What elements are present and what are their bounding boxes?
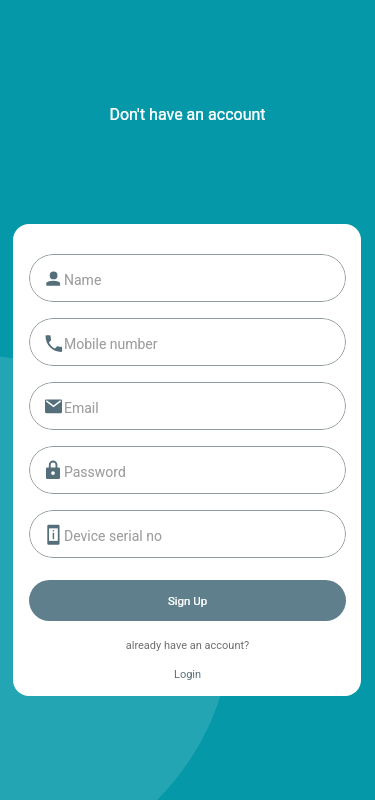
staticText: Name (64, 272, 102, 288)
button[interactable]: Login (160, 665, 216, 684)
staticText: Mobile number (64, 336, 158, 352)
button[interactable]: Device serial no (29, 510, 346, 558)
button[interactable]: Password (29, 446, 346, 494)
staticText: Email (64, 400, 99, 416)
staticText: already have an account? (29, 639, 346, 652)
staticText: Device serial no (64, 528, 162, 544)
button[interactable]: Email (29, 382, 346, 430)
button[interactable]: Mobile number (29, 318, 346, 366)
staticText: Sign Up (168, 594, 208, 607)
staticText: Login (174, 668, 202, 681)
staticText: Don't have an account (0, 105, 375, 124)
button[interactable]: Sign Up (29, 580, 346, 621)
staticText: Password (64, 464, 126, 480)
button[interactable]: Name (29, 254, 346, 302)
